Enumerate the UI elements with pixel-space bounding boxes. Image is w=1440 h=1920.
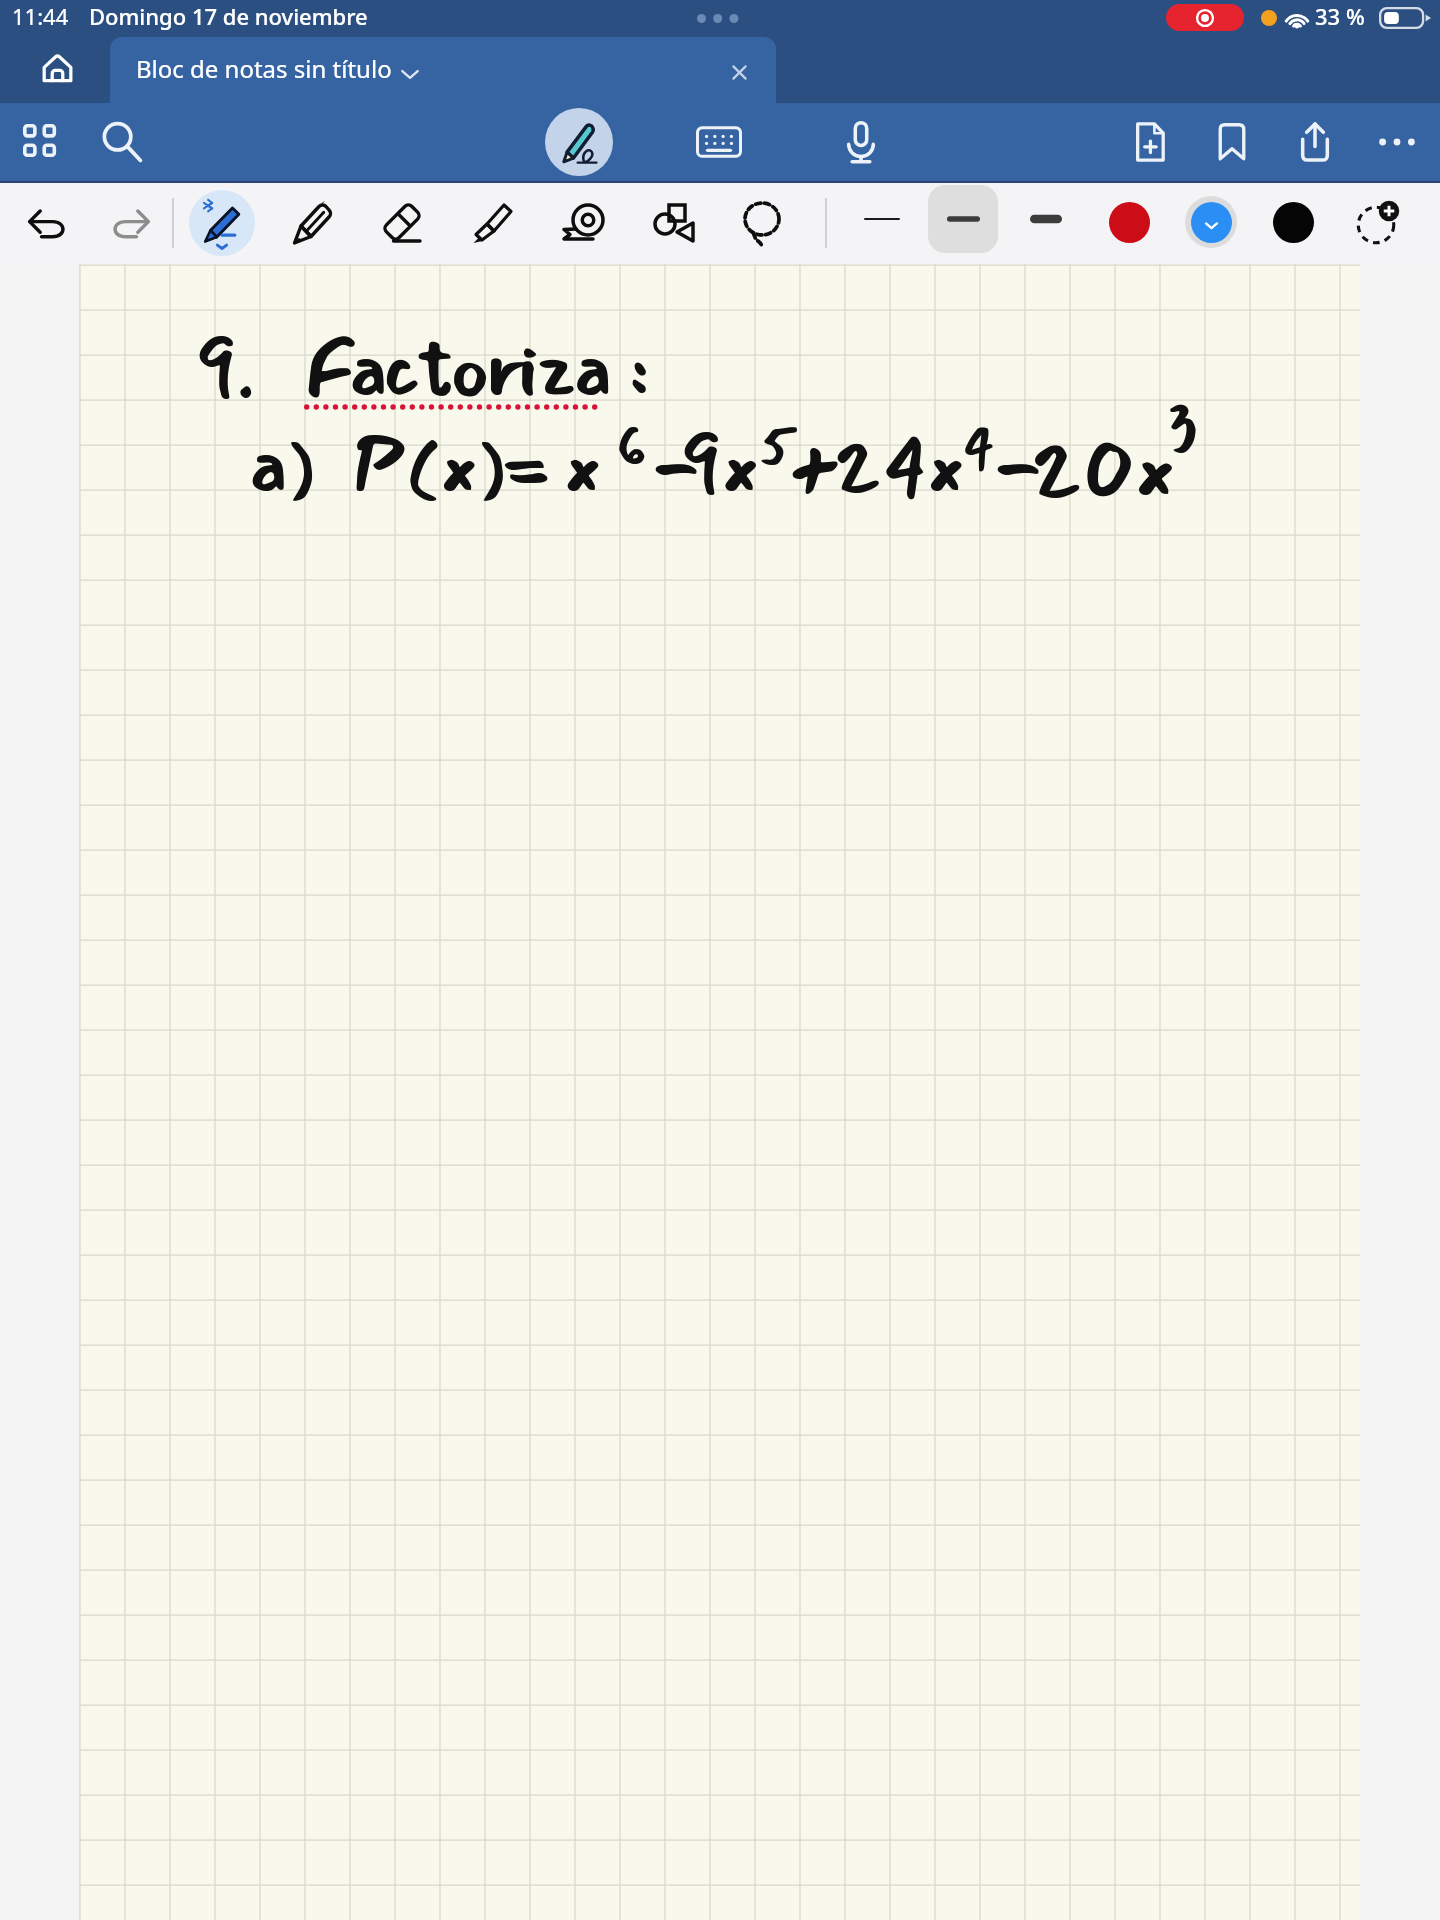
staticText: 9. (196, 307, 256, 430)
staticText: - (993, 404, 1042, 527)
staticText: 3 (1166, 371, 1198, 481)
staticText: 24x (834, 404, 966, 527)
staticText: 3 (1166, 370, 1198, 480)
button[interactable]: Bloc de notas sin título (110, 37, 776, 103)
button[interactable]: Inicio (22, 38, 92, 100)
staticText: Domingo 17 de noviembre (89, 1, 368, 31)
staticText: Factoriza (305, 308, 609, 431)
staticText: 6 (617, 403, 648, 490)
button[interactable]: Color (1100, 193, 1158, 251)
staticText: - (651, 404, 700, 527)
staticText: 24x (833, 404, 965, 527)
button[interactable]: Selección (731, 192, 793, 254)
staticText: 11:44 (12, 1, 69, 31)
staticText: 4 (963, 402, 996, 489)
staticText: a) (249, 403, 316, 526)
button[interactable]: Añadir color (1350, 194, 1408, 252)
staticText: : (628, 308, 649, 431)
button[interactable]: Marcador (1202, 112, 1262, 172)
button[interactable]: Más opciones (1367, 112, 1427, 172)
staticText: 20x (1031, 402, 1176, 535)
button[interactable]: Resaltador (461, 192, 523, 254)
staticText: 4 (963, 403, 996, 490)
staticText: a) (248, 404, 315, 527)
staticText: - (993, 403, 1042, 526)
button[interactable]: Grosor de trazo (847, 185, 917, 253)
staticText: Factoriza (305, 307, 609, 430)
button[interactable]: Deshacer (17, 192, 79, 254)
button[interactable]: Grabando (1166, 4, 1244, 31)
staticText: 3 (1167, 370, 1199, 480)
staticText: 9. (196, 308, 256, 431)
staticText: x (563, 404, 602, 527)
staticText: 6 (616, 402, 647, 489)
staticText: 9x (681, 403, 760, 526)
button[interactable]: Bolígrafo (189, 190, 255, 256)
button[interactable]: Compartir (1285, 112, 1345, 172)
staticText: 5 (759, 402, 798, 489)
staticText: - (994, 403, 1043, 526)
staticText: 33 % (1315, 1, 1365, 31)
button[interactable]: Nueva página (1120, 112, 1180, 172)
staticText: = (500, 404, 551, 527)
staticText: a) (248, 403, 315, 526)
staticText: x (564, 404, 603, 527)
staticText: 5 (759, 403, 798, 490)
staticText: P(x) (352, 403, 506, 526)
staticText: + (788, 403, 841, 526)
staticText: = (501, 403, 552, 526)
staticText: 20x (1030, 402, 1175, 535)
staticText: x (563, 403, 602, 526)
button[interactable]: Lápiz (280, 192, 342, 254)
button[interactable]: Color azul seleccionado (1185, 196, 1237, 248)
staticText: a) (249, 404, 316, 527)
staticText: Bloc de notas sin título (136, 52, 392, 85)
staticText: 4 (962, 402, 995, 489)
staticText: Factoriza (304, 307, 608, 430)
staticText: 6 (616, 403, 647, 490)
button[interactable]: Cuadrícula (11, 112, 71, 172)
staticText: = (501, 404, 552, 527)
button[interactable]: Teclado (689, 112, 749, 172)
button[interactable]: Cerrar pestaña (717, 50, 761, 94)
staticText: : (629, 308, 650, 431)
button[interactable]: Buscar (92, 112, 152, 172)
button[interactable]: Rehacer (99, 192, 161, 254)
staticText: - (994, 404, 1043, 527)
staticText: : (628, 307, 649, 430)
staticText: : (629, 307, 650, 430)
staticText: 20x (1031, 401, 1176, 534)
staticText: 9x (681, 404, 760, 527)
staticText: 9. (195, 308, 255, 431)
staticText: 5 (758, 402, 797, 489)
staticText: + (789, 403, 842, 526)
staticText: 6 (617, 402, 648, 489)
staticText: Factoriza (304, 308, 608, 431)
button[interactable]: Color (1264, 193, 1322, 251)
button[interactable]: Lápiz (545, 108, 613, 176)
staticText: - (651, 403, 700, 526)
staticText: 5 (758, 403, 797, 490)
staticText: 24x (833, 403, 965, 526)
button[interactable]: Borrador (371, 192, 433, 254)
staticText: 3 (1167, 371, 1199, 481)
staticText: = (500, 403, 551, 526)
button[interactable]: Micrófono (831, 112, 891, 172)
staticText: - (652, 404, 701, 527)
staticText: - (652, 403, 701, 526)
staticText: P(x) (353, 404, 507, 527)
staticText: x (564, 403, 603, 526)
staticText: + (789, 404, 842, 527)
staticText: P(x) (353, 403, 507, 526)
staticText: 9x (680, 404, 759, 527)
staticText: + (788, 404, 841, 527)
staticText: 9x (680, 403, 759, 526)
button[interactable]: Grosor de trazo (928, 185, 998, 253)
button[interactable]: Formas (641, 192, 703, 254)
staticText: 4 (962, 403, 995, 490)
button[interactable]: Grosor de trazo (1011, 185, 1081, 253)
staticText: 20x (1030, 401, 1175, 534)
staticText: P(x) (352, 404, 506, 527)
staticText: 24x (834, 403, 966, 526)
button[interactable]: Cinta (552, 192, 614, 254)
